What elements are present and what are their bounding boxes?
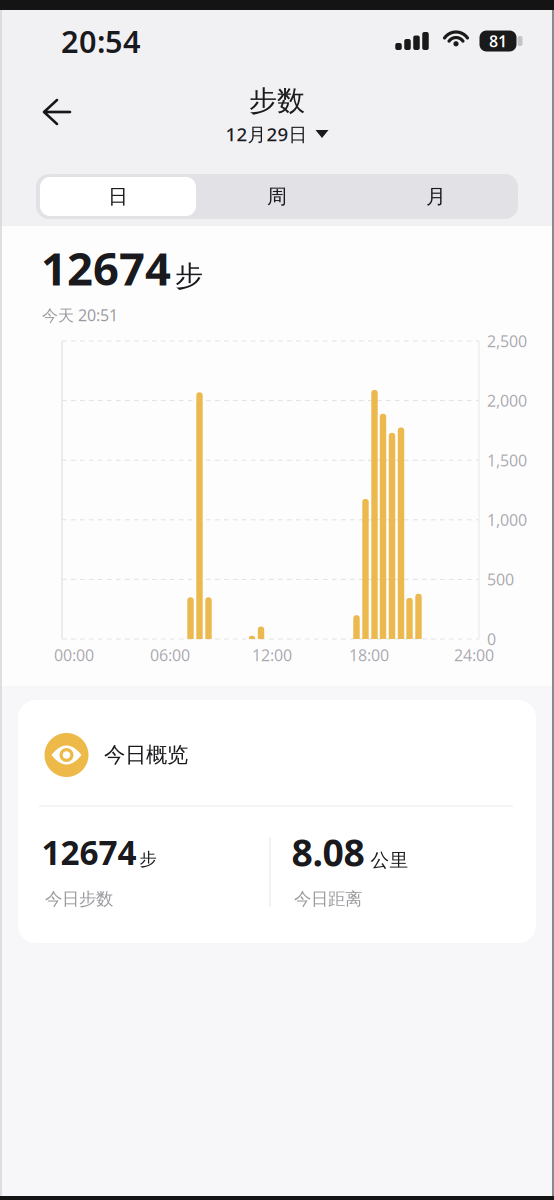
staticText: 步 (175, 259, 203, 293)
staticText: 06:00 (150, 644, 190, 666)
staticText: 月 (426, 184, 446, 209)
button[interactable]: 周 (197, 174, 356, 219)
staticText: 周 (267, 184, 287, 209)
staticText: 12674 (41, 830, 136, 874)
staticText: 今日概览 (104, 742, 188, 768)
staticText: 日 (108, 184, 128, 209)
button[interactable]: 月 (356, 174, 515, 219)
staticText: 今天 20:51 (42, 304, 118, 326)
staticText: 2,500 (487, 330, 527, 352)
staticText: 今日距离 (294, 888, 362, 910)
staticText: 步数 (249, 84, 305, 118)
button[interactable]: Back (33, 90, 81, 134)
staticText: 81 (489, 30, 507, 52)
staticText: 1,500 (487, 450, 527, 471)
button[interactable]: 日 (38, 174, 197, 219)
staticText: 24:00 (454, 644, 494, 666)
staticText: 8.08 (291, 827, 364, 877)
staticText: 12月29日 (225, 122, 307, 146)
button[interactable]: 今日概览 (18, 700, 536, 943)
staticText: 12674 (41, 238, 171, 298)
staticText: 20:54 (61, 21, 141, 61)
staticText: 2,000 (487, 390, 527, 411)
staticText: 500 (487, 569, 514, 590)
staticText: 12:00 (252, 644, 292, 666)
button[interactable]: 选择日期 (225, 122, 328, 146)
staticText: 1,000 (487, 509, 527, 530)
staticText: 18:00 (349, 644, 389, 666)
staticText: 0 (487, 628, 496, 650)
staticText: 公里 (370, 849, 408, 872)
staticText: 今日步数 (45, 888, 113, 910)
staticText: 步 (139, 848, 156, 870)
staticText: 00:00 (54, 644, 94, 666)
